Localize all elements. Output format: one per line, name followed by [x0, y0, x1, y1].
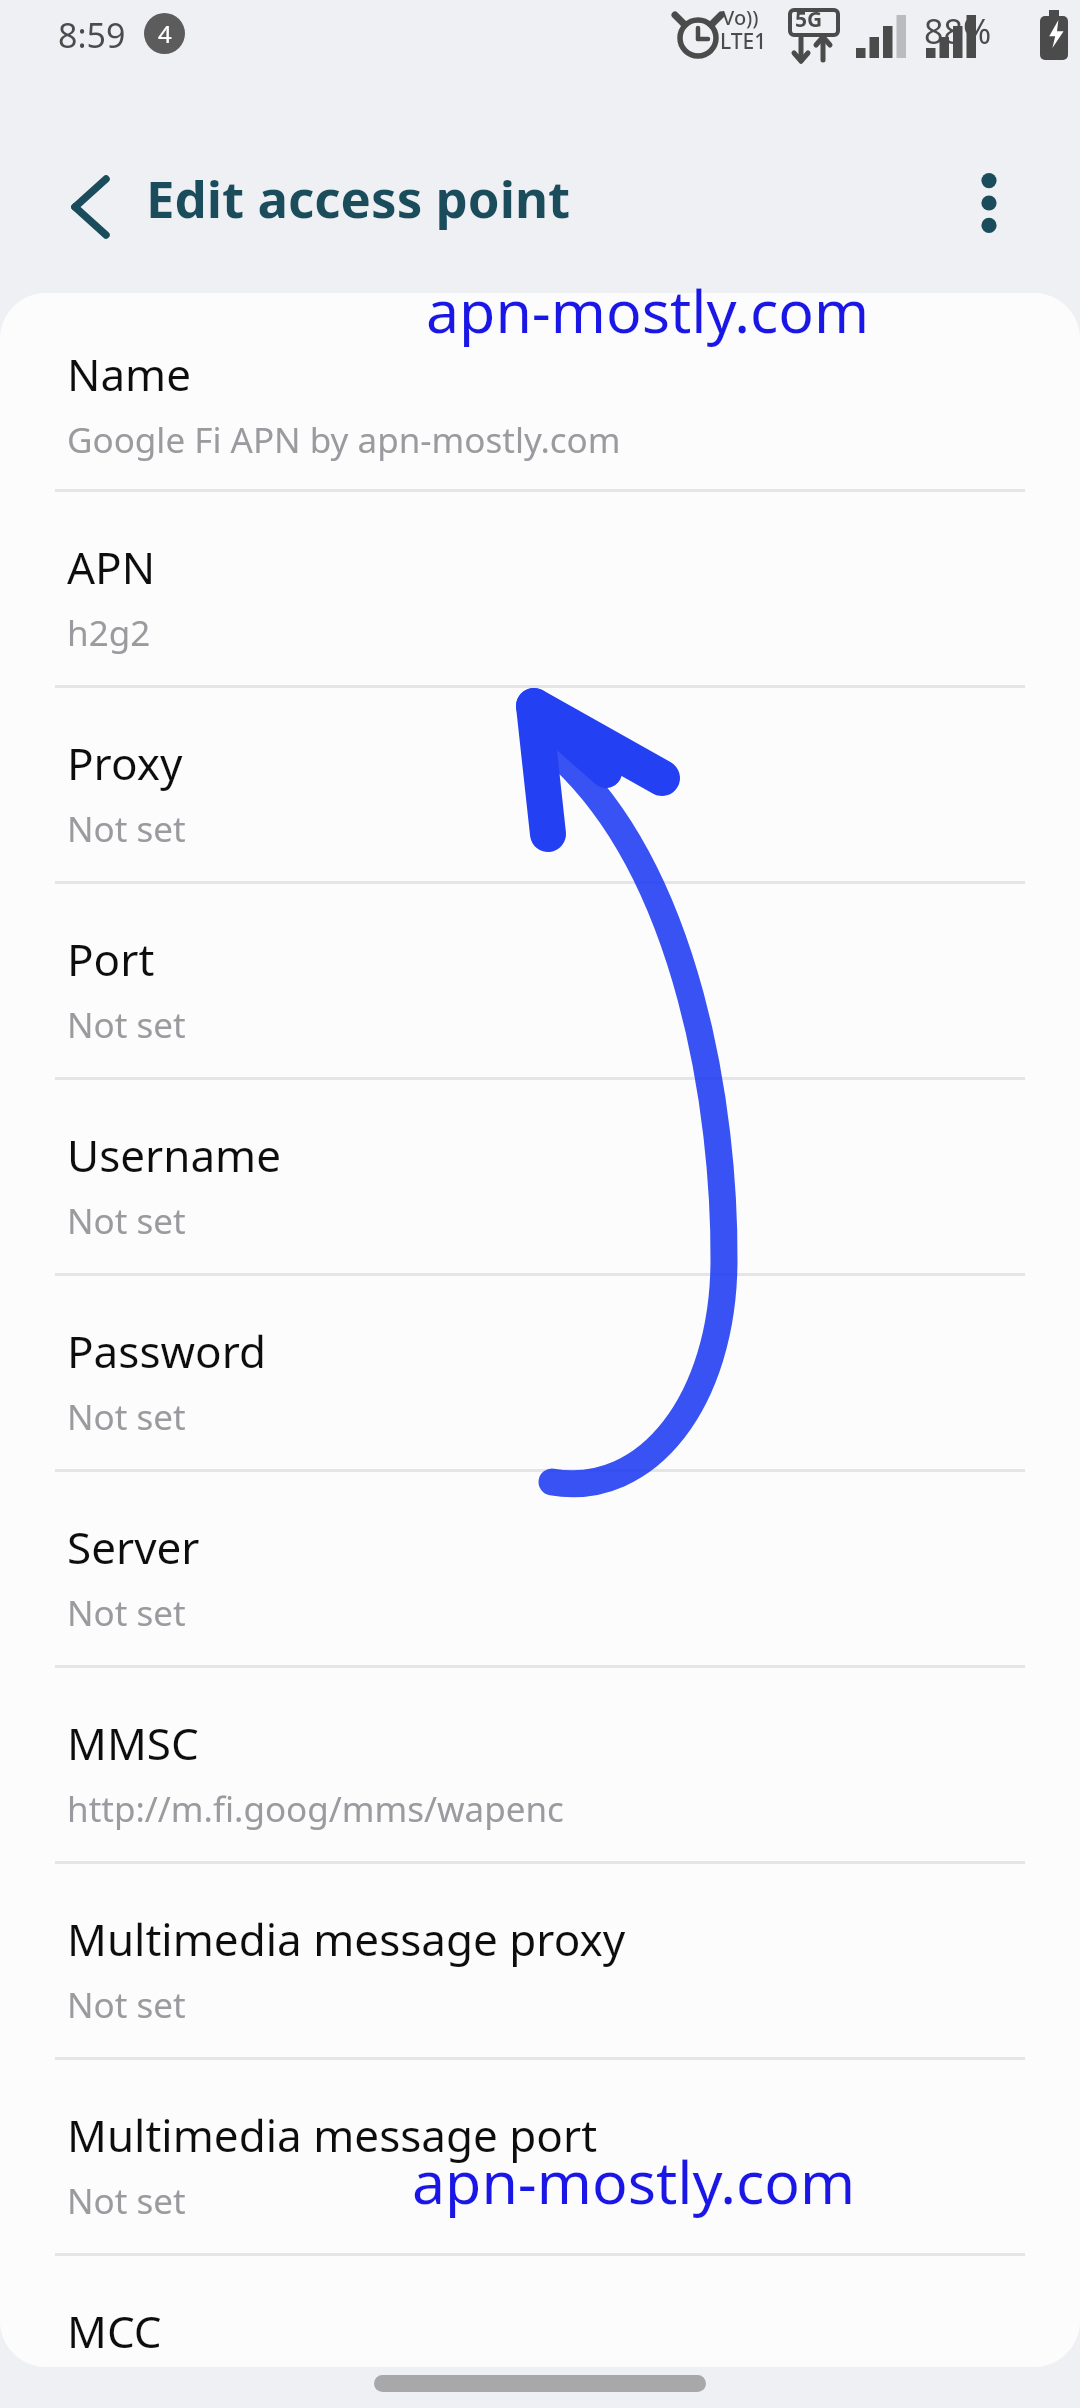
staticText: Port: [67, 929, 155, 989]
staticText: Proxy: [67, 733, 183, 793]
staticText: Not set: [67, 2177, 186, 2225]
button[interactable]: Server: [0, 1472, 1080, 1665]
staticText: MMSC: [67, 1713, 199, 1773]
staticText: APN: [67, 537, 156, 597]
staticText: Not set: [67, 1589, 186, 1637]
staticText: Vo)): [722, 4, 759, 31]
staticText: apn-mostly.com: [412, 2141, 856, 2221]
button[interactable]: Proxy: [0, 688, 1080, 881]
button[interactable]: Username: [0, 1080, 1080, 1273]
staticText: http://m.fi.goog/mms/wapenc: [67, 1785, 564, 1833]
staticText: Multimedia message port: [67, 2105, 598, 2165]
staticText: Not set: [67, 805, 186, 853]
staticText: Server: [67, 1517, 200, 1577]
staticText: Not set: [67, 1197, 186, 1245]
button[interactable]: MMSC: [0, 1668, 1080, 1861]
staticText: Not set: [67, 1393, 186, 1441]
staticText: Name: [67, 344, 192, 404]
staticText: Not set: [67, 1001, 186, 1049]
button[interactable]: Port: [0, 884, 1080, 1077]
button[interactable]: Back: [38, 155, 142, 259]
staticText: Not set: [67, 1981, 186, 2029]
button[interactable]: Multimedia message proxy: [0, 1864, 1080, 2057]
button[interactable]: Password: [0, 1276, 1080, 1469]
staticText: 5G: [795, 5, 823, 34]
button[interactable]: Name: [0, 293, 1080, 489]
button[interactable]: APN: [0, 492, 1080, 685]
staticText: 8:59: [58, 12, 126, 58]
staticText: LTE1: [720, 27, 767, 56]
staticText: 88%: [924, 8, 992, 54]
staticText: Password: [67, 1321, 267, 1381]
staticText: apn-mostly.com: [426, 270, 870, 350]
button[interactable]: Multimedia message port: [0, 2060, 1080, 2253]
button[interactable]: MCC: [0, 2256, 1080, 2367]
staticText: Google Fi APN by apn-mostly.com: [67, 416, 621, 464]
staticText: Username: [67, 1125, 282, 1185]
staticText: Multimedia message proxy: [67, 1909, 626, 1969]
button[interactable]: More options: [938, 152, 1040, 254]
staticText: 4: [158, 17, 172, 50]
staticText: h2g2: [67, 609, 151, 657]
staticText: MCC: [67, 2301, 162, 2361]
staticText: Edit access point: [146, 163, 571, 232]
